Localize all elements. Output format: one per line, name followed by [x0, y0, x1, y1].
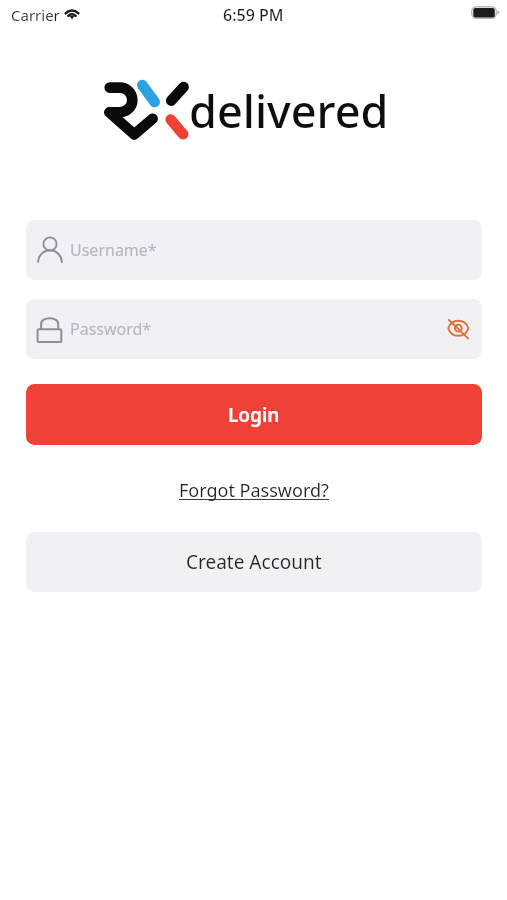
staticText: Create Account — [186, 549, 322, 575]
button[interactable]: Create Account — [26, 532, 482, 592]
button[interactable]: Password* — [26, 299, 482, 359]
button[interactable]: Show password — [441, 309, 475, 349]
staticText: Username* — [70, 239, 157, 261]
staticText: Login — [228, 402, 280, 428]
staticText: 6:59 PM — [223, 4, 284, 26]
staticText: Password* — [70, 318, 152, 340]
button[interactable]: Username* — [26, 220, 482, 280]
button[interactable]: Forgot Password? — [167, 470, 341, 511]
button[interactable]: Login — [26, 384, 482, 445]
staticText: delivered — [189, 80, 389, 141]
staticText: Forgot Password? — [179, 478, 329, 503]
staticText: Carrier — [11, 5, 60, 25]
